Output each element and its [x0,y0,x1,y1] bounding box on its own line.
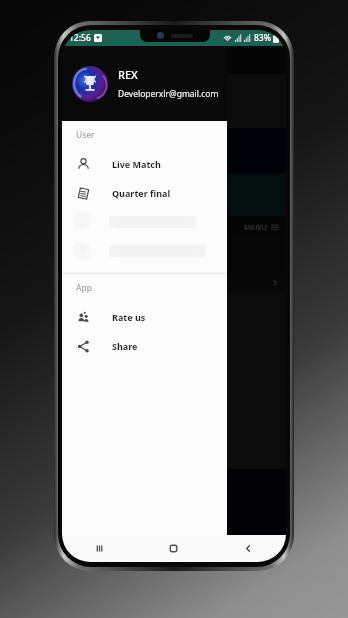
staticText: Quarter final [112,187,171,199]
staticText: App [76,282,92,294]
staticText: REX [118,67,138,82]
staticText: FILTER [177,250,204,261]
button[interactable]: Recent apps [62,535,136,562]
button[interactable]: Share [62,331,227,360]
staticText: Rate us [112,311,146,323]
staticText: Live Match [112,158,161,170]
staticText: Prayers for the safe return [71,81,171,92]
staticText: Share [112,340,138,352]
button[interactable]: Quarter final [62,178,227,207]
staticText: of football family members [71,96,167,106]
button[interactable]: Live Match [62,149,227,178]
staticText: 12:56 [69,32,91,44]
staticText: 83% [254,32,271,44]
button[interactable]: Rate us [62,302,227,331]
button[interactable]: Back [211,535,286,562]
staticText: AUG 2020 [69,278,105,288]
staticText: Developerxlr@gmail.com [118,88,219,100]
button[interactable]: Home [136,535,211,562]
staticText: User [76,129,95,141]
button[interactable]: REX [62,46,227,121]
button[interactable]: FILTER [167,246,225,265]
staticText: MENU [244,222,268,232]
